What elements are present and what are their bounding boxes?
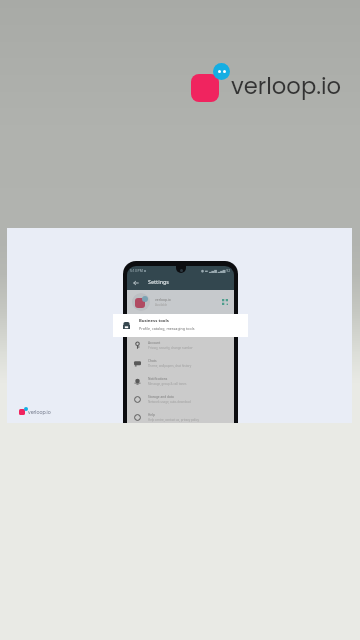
staticText: verloop.io [155,297,171,301]
staticText: Profile, catalog, messaging tools [139,326,195,331]
staticText: Settings [148,278,169,285]
staticText: 5:13 PM [130,268,143,273]
button[interactable]: Help [127,408,234,423]
button[interactable]: Storage and data [127,390,234,408]
staticText: Privacy, security, change number [148,346,193,350]
staticText: Help centre, contact us, privacy policy [148,418,199,422]
staticText: Account [148,341,161,345]
staticText: Storage and data [148,395,174,399]
staticText: Notifications [148,377,168,381]
staticText: Message, group & call tones [148,382,187,386]
staticText: verloop.io [231,70,342,102]
button[interactable]: Business tools [113,314,248,337]
button[interactable]: verloop.io [127,290,234,314]
staticText: Network usage, auto-download [148,400,191,404]
staticText: Available [155,303,168,307]
button[interactable]: Back [133,280,139,286]
button[interactable]: Notifications [127,372,234,390]
button[interactable]: QR code [222,299,228,305]
staticText: ● ▬ ▂▄▆ ▂▄▆ 92 [201,268,231,273]
button[interactable]: Chats [127,354,234,372]
staticText: Help [148,413,155,417]
staticText: Business tools [139,318,169,324]
button[interactable]: verloop.io [188,58,346,104]
staticText: Chats [148,359,157,363]
button[interactable]: verloop.io [18,406,66,418]
button[interactable]: Account [127,336,234,354]
staticText: Theme, wallpapers, chat history [148,364,192,368]
staticText: verloop.io [28,409,51,416]
